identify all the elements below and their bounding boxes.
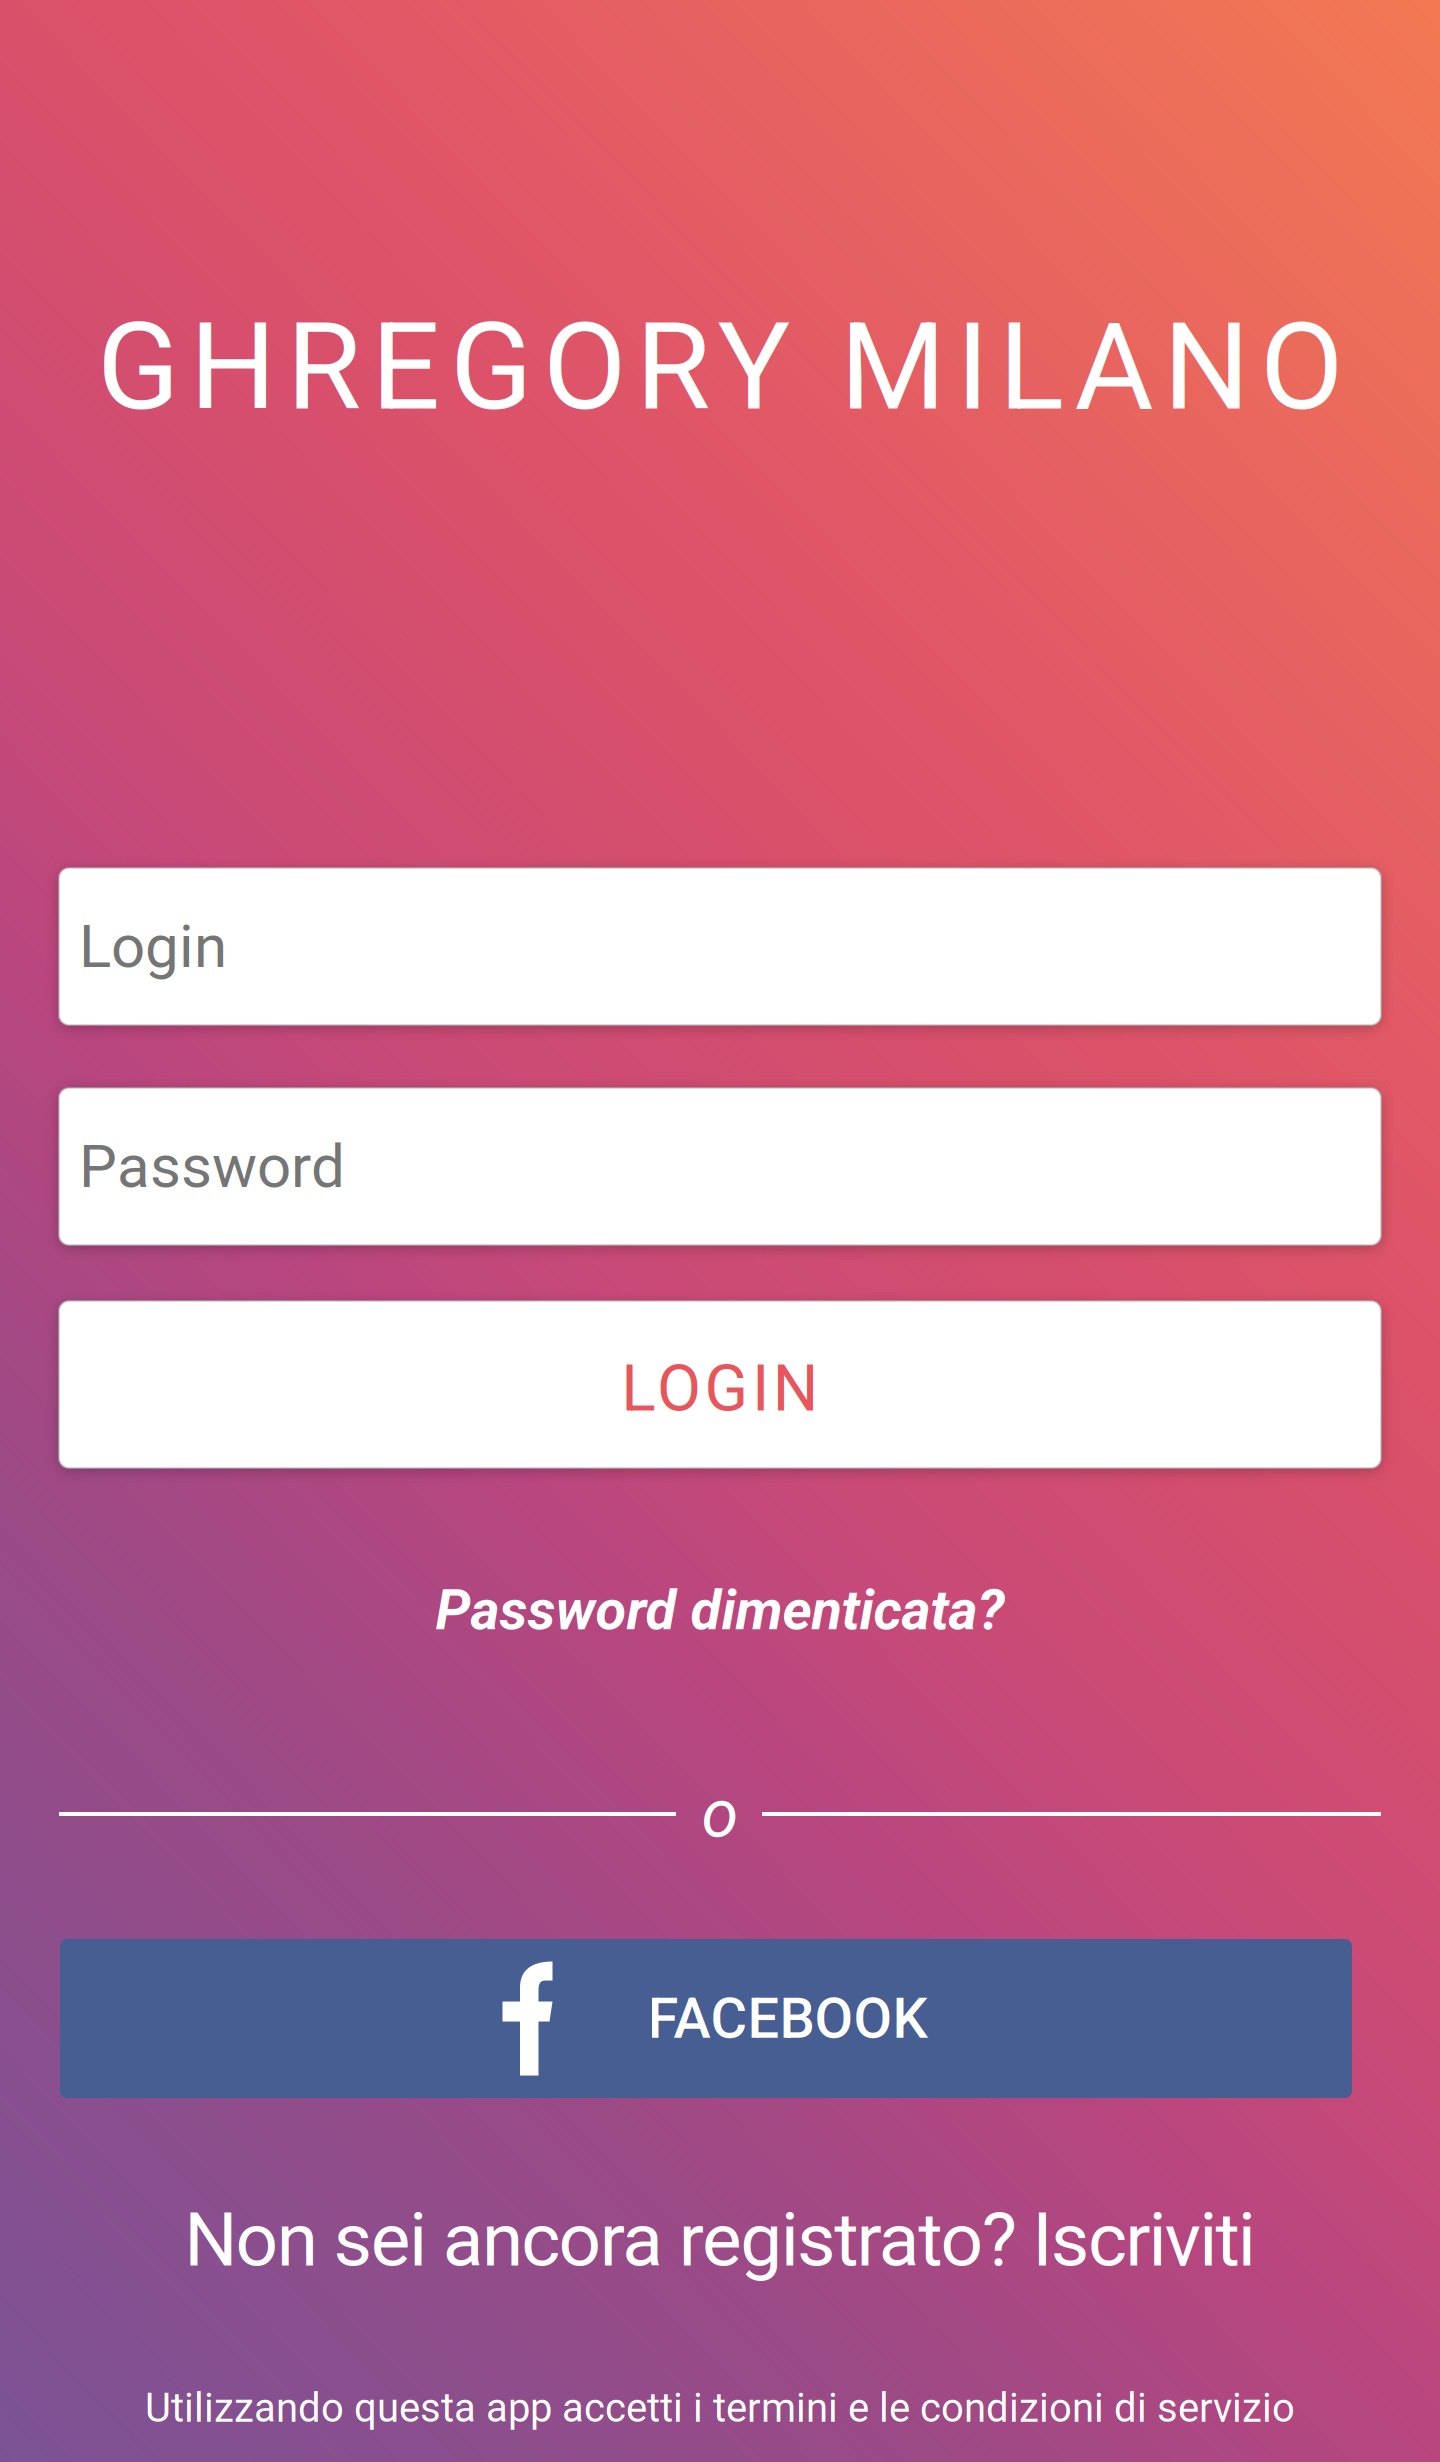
staticText: Non sei ancora registrato? Iscriviti xyxy=(184,2196,1256,2284)
staticText: FACEBOOK xyxy=(647,1986,927,2051)
staticText: Login xyxy=(79,911,227,982)
staticText: Password xyxy=(79,1131,345,1202)
staticText: Password dimenticata? xyxy=(435,1577,1004,1643)
button[interactable]: LOGIN xyxy=(59,1301,1381,1468)
staticText: LOGIN xyxy=(621,1351,819,1426)
button[interactable]: FACEBOOK xyxy=(60,1939,1352,2098)
staticText: Utilizzando questa app accetti i termini… xyxy=(145,2385,1295,2431)
staticText: o xyxy=(701,1775,738,1853)
staticText: GHREGORY MILANO xyxy=(97,296,1343,438)
button[interactable]: Password dimenticata? xyxy=(0,1582,1440,1638)
button[interactable]: Non sei ancora registrato? Iscriviti xyxy=(0,2200,1440,2280)
